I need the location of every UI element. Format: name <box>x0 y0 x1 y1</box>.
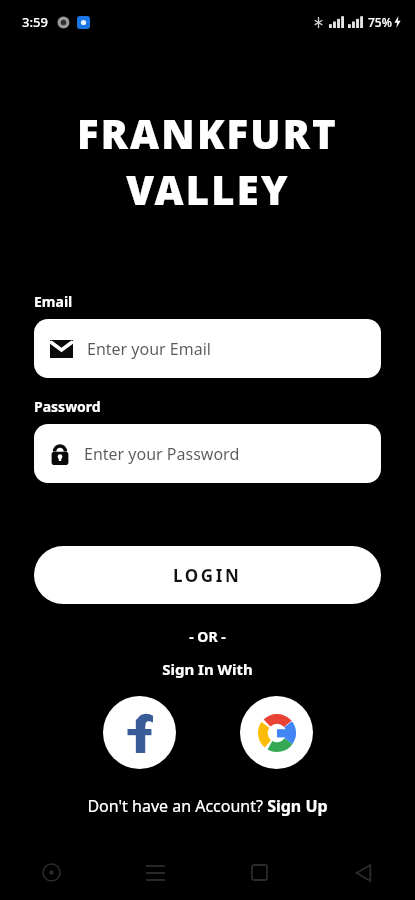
staticText: Enter your Email <box>87 338 211 360</box>
button[interactable]: Home <box>207 845 311 900</box>
button[interactable]: Sign in with Google <box>240 696 313 769</box>
button[interactable]: Menu <box>103 845 207 900</box>
staticText: 3:59 <box>22 13 48 31</box>
button[interactable]: LOGIN <box>34 546 381 604</box>
button[interactable]: Assistant <box>0 845 103 900</box>
staticText: Sign In With <box>0 659 415 679</box>
staticText: - OR - <box>0 627 415 646</box>
button[interactable]: Back <box>311 845 415 900</box>
staticText: 75% <box>368 14 392 30</box>
staticText: FRANKFURT <box>77 106 338 160</box>
staticText: Enter your Password <box>84 443 240 465</box>
staticText: Password <box>34 397 101 416</box>
staticText: Email <box>34 292 73 311</box>
button[interactable]: Enter your Password <box>34 424 381 483</box>
button[interactable]: Enter your Email <box>34 319 381 378</box>
button[interactable]: Don't have an Account? Sign Up <box>0 795 415 817</box>
button[interactable]: Sign in with Facebook <box>103 696 176 769</box>
staticText: VALLEY <box>126 162 290 216</box>
staticText: Don't have an Account? Sign Up <box>87 795 328 817</box>
staticText: LOGIN <box>173 564 242 587</box>
